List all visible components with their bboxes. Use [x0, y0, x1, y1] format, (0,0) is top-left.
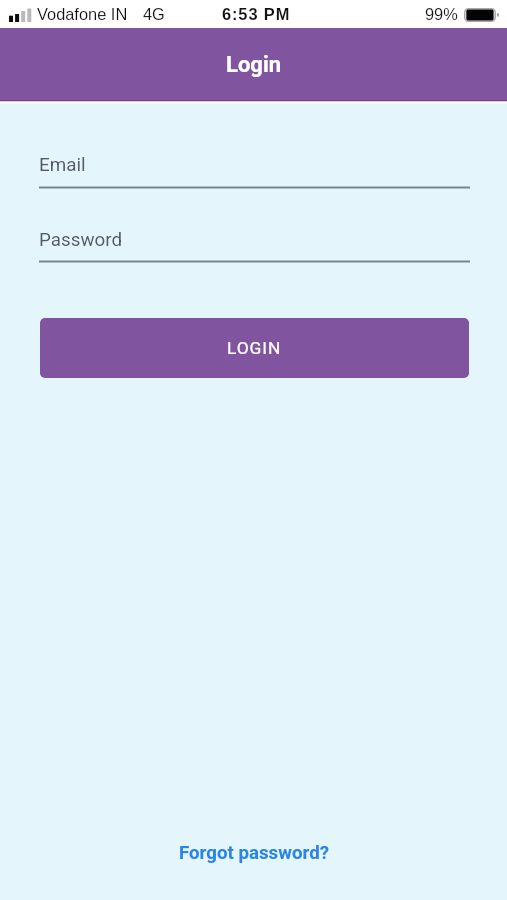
button[interactable]: Password	[39, 222, 470, 263]
staticText: Password	[39, 229, 123, 251]
staticText: Email	[39, 154, 86, 176]
staticText: Login	[226, 52, 282, 78]
button[interactable]: Email	[39, 147, 470, 189]
button[interactable]: LOGIN	[40, 318, 469, 378]
staticText: Forgot password?	[179, 842, 329, 864]
other: Battery 99 percent	[464, 8, 499, 22]
staticText: 99%	[425, 5, 458, 23]
staticText: Vodafone IN	[37, 5, 128, 23]
staticText: LOGIN	[227, 338, 282, 358]
staticText: 4G	[143, 5, 165, 23]
button[interactable]: Forgot password?	[0, 836, 507, 870]
other: Signal strength	[9, 8, 31, 22]
staticText: 6:53 PM	[222, 5, 291, 23]
